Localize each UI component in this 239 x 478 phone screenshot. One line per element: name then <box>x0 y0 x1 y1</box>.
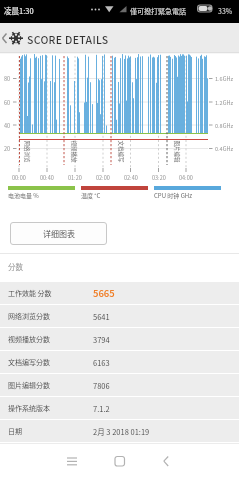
staticText: 5641 <box>93 311 110 322</box>
staticText: 网络浏览分数 <box>8 311 50 321</box>
button[interactable]: 视频播放分数 <box>0 328 239 350</box>
staticText: 02:00 <box>96 174 110 182</box>
staticText: 视频播放 <box>69 140 77 163</box>
staticText: 温度 °C <box>81 191 101 200</box>
staticText: 图片编辑 <box>172 140 180 163</box>
staticText: 网络浏览 <box>22 140 30 163</box>
button[interactable] <box>57 446 87 476</box>
staticText: 80 <box>4 75 11 83</box>
button[interactable] <box>104 446 134 476</box>
button[interactable] <box>151 446 181 476</box>
staticText: 7.1.2 <box>93 403 110 414</box>
staticText: SCORE DETAILS <box>27 32 109 47</box>
button[interactable]: 文档编写分数 <box>0 351 239 373</box>
button[interactable]: 网络浏览分数 <box>0 305 239 327</box>
staticText: 5665 <box>93 286 115 300</box>
staticText: 00:00 <box>12 174 26 182</box>
staticText: 0.8GHz <box>215 122 234 130</box>
staticText: 2月 3 2018 01:19 <box>93 426 150 437</box>
staticText: 僅可撥打緊急電話 <box>130 6 186 16</box>
staticText: 凌晨1:30 <box>4 5 34 16</box>
staticText: 03:20 <box>152 174 166 182</box>
button[interactable]: 操作系统版本 <box>0 397 239 419</box>
button[interactable]: 工作效能 分数 <box>0 282 239 304</box>
staticText: 1.6GHz <box>215 75 234 83</box>
staticText: 00:40 <box>40 174 54 182</box>
staticText: 视频播放分数 <box>8 334 50 344</box>
staticText: 40 <box>4 122 11 130</box>
staticText: 详细图表 <box>43 228 75 240</box>
button[interactable]: 详细图表 <box>10 222 107 245</box>
staticText: 操作系统版本 <box>8 403 50 413</box>
staticText: 20 <box>4 145 11 153</box>
staticText: 文档编写 <box>116 140 124 163</box>
staticText: 3794 <box>93 334 110 345</box>
staticText: 工作效能 分数 <box>8 288 52 298</box>
staticText: 分数 <box>8 261 23 272</box>
staticText: 6163 <box>93 357 110 368</box>
button[interactable] <box>0 23 239 53</box>
staticText: 日期 <box>8 426 22 436</box>
staticText: CPU 时钟 GHz <box>154 191 192 200</box>
staticText: 60 <box>4 99 11 107</box>
staticText: 33% <box>218 6 233 16</box>
staticText: 0.4GHz <box>215 145 234 153</box>
staticText: 文档编写分数 <box>8 357 50 367</box>
staticText: 图片编辑分数 <box>8 380 50 390</box>
staticText: 01:20 <box>68 174 82 182</box>
staticText: 04:00 <box>179 174 193 182</box>
staticText: 7806 <box>93 380 110 391</box>
staticText: 电池电量 % <box>8 191 39 200</box>
staticText: 02:40 <box>124 174 138 182</box>
staticText: 1.2GHz <box>215 99 234 107</box>
button[interactable]: 日期 <box>0 420 239 442</box>
button[interactable]: 图片编辑分数 <box>0 374 239 396</box>
